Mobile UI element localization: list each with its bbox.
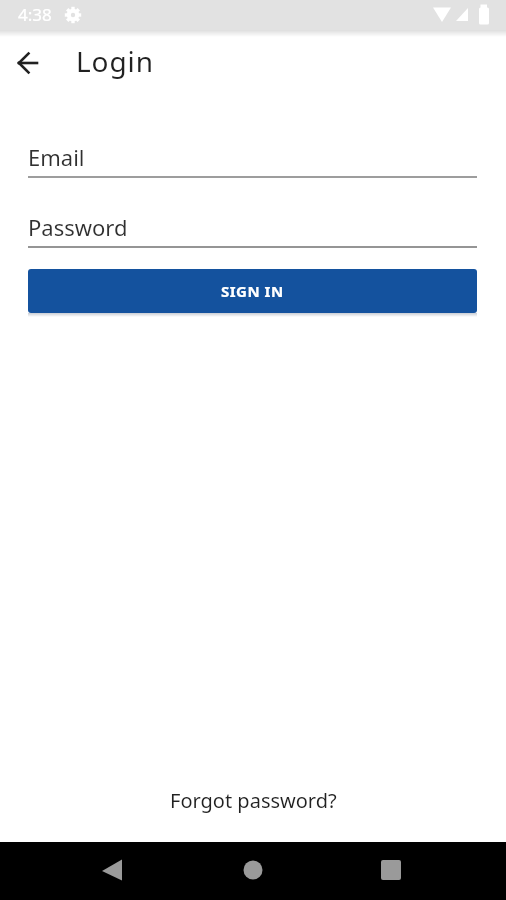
button[interactable]: SIGN IN [28, 269, 477, 313]
staticText: 4:38 [18, 3, 52, 26]
staticText: Forgot password? [170, 787, 337, 814]
button[interactable]: Email [28, 138, 477, 178]
staticText: Password [28, 212, 128, 242]
staticText: Login [76, 42, 154, 80]
button[interactable]: Password [28, 208, 477, 248]
staticText: SIGN IN [221, 281, 284, 301]
button[interactable]: Forgot password? [170, 787, 337, 814]
staticText: Email [28, 142, 85, 172]
button[interactable] [4, 39, 52, 87]
